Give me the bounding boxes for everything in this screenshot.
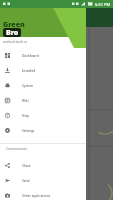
button[interactable]: Send — [0, 173, 86, 188]
button[interactable]: Wiki — [0, 93, 86, 108]
button[interactable]: Settings — [0, 123, 86, 138]
button[interactable]: Dashboard — [0, 48, 86, 63]
staticText: Help — [22, 114, 30, 118]
staticText: Other applications — [22, 194, 51, 198]
staticText: Send — [22, 179, 30, 183]
staticText: Share — [22, 164, 31, 168]
staticText: Green — [3, 20, 25, 30]
button[interactable]: Installed — [0, 63, 86, 78]
button[interactable]: Share — [0, 158, 86, 173]
staticText: Wiki — [22, 99, 29, 103]
button[interactable]: Other applications — [0, 188, 86, 200]
button[interactable]: System — [0, 78, 86, 93]
staticText: System — [22, 84, 34, 88]
staticText: android-tools.ru — [3, 40, 28, 44]
staticText: Communicate — [6, 147, 28, 151]
staticText: Settings — [22, 129, 35, 133]
staticText: Dashboard — [22, 54, 39, 58]
staticText: 6:31 PM — [95, 2, 111, 7]
staticText: Installed — [22, 69, 36, 73]
button[interactable]: Help — [0, 108, 86, 123]
staticText: Bro — [6, 28, 19, 37]
